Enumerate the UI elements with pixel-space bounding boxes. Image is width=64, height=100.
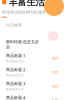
staticText: 商品标题 4 xyxy=(6,95,25,100)
staticText: 丰富生活 xyxy=(8,0,44,8)
staticText: ¥29 xyxy=(52,69,58,75)
staticText: 商品标题 2 xyxy=(6,67,25,72)
staticText: ¥29 xyxy=(52,97,58,100)
staticText: 发现身边的好物与好服务 xyxy=(2,10,46,15)
staticText: 今日推荐 xyxy=(6,23,22,27)
staticText: 简短描述文字 xyxy=(6,74,24,77)
staticText: 限时特惠 低至五折起 xyxy=(6,39,39,49)
staticText: 商品标题 1 xyxy=(6,53,25,58)
staticText: 简短描述文字 xyxy=(6,60,24,63)
staticText: 简短描述文字 xyxy=(6,88,24,91)
staticText: 商品标题 3 xyxy=(6,81,25,86)
staticText: ¥29 xyxy=(52,83,58,89)
staticText: ¥29 xyxy=(52,55,58,61)
